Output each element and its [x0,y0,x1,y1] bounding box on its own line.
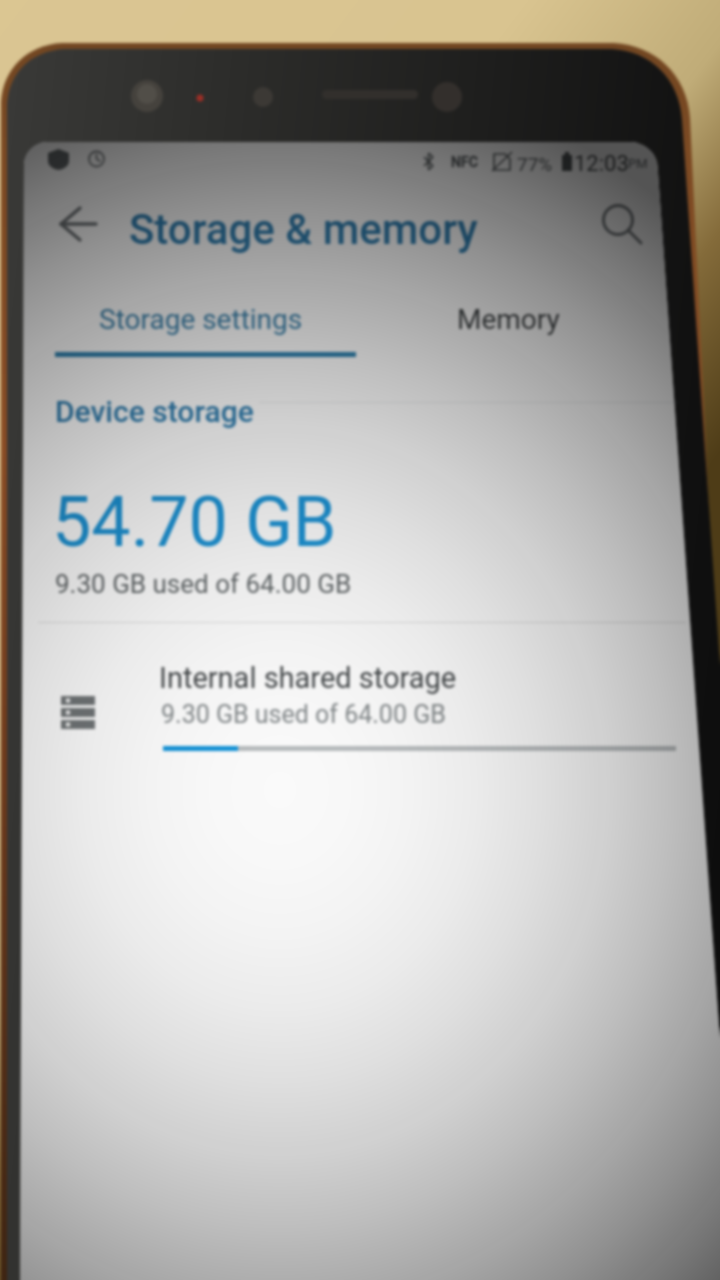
staticText: 9.30 GB used of 64.00 GB [55,569,352,599]
button[interactable]: Internal shared storage [24,634,700,784]
button[interactable]: Search [586,188,650,250]
staticText: NFC [451,154,478,170]
staticText: PM [628,156,648,171]
button[interactable]: Storage settings [24,268,360,358]
button[interactable]: Back [38,186,106,248]
staticText: Memory [457,303,560,336]
staticText: Device storage [55,394,254,429]
staticText: Storage settings [99,303,303,336]
staticText: Internal shared storage [159,661,457,695]
staticText: 77% [517,153,553,175]
staticText: Storage & memory [129,205,478,254]
staticText: 54.70 GB [52,481,337,563]
staticText: 12:03 [574,151,629,177]
staticText: 9.30 GB used of 64.00 GB [161,700,446,729]
button[interactable]: Memory [360,268,700,358]
